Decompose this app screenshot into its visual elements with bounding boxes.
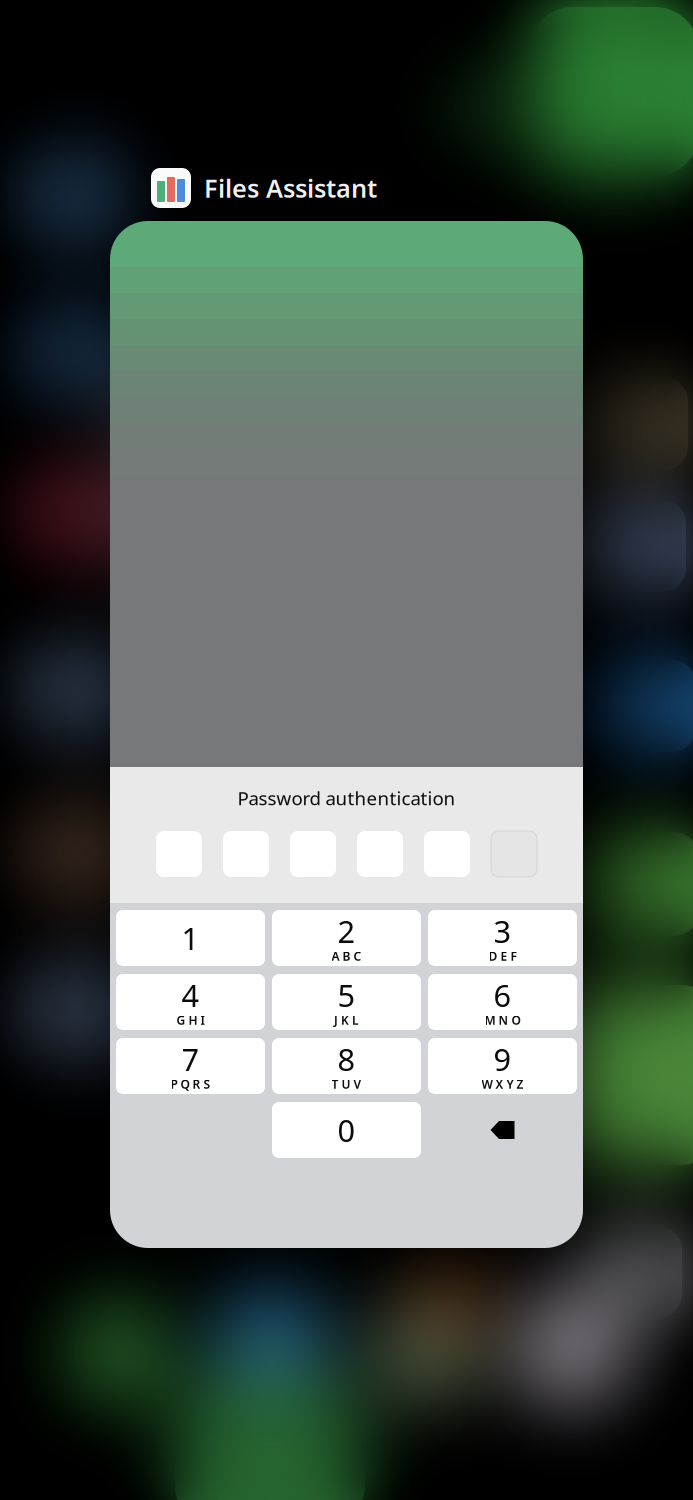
staticText: 5 <box>337 975 355 1015</box>
staticText: D E F <box>488 948 516 964</box>
staticText: T U V <box>331 1076 361 1092</box>
staticText: 3 <box>493 911 511 951</box>
staticText: 4 <box>181 975 199 1015</box>
staticText: Password authentication <box>237 786 455 810</box>
staticText: P Q R S <box>170 1076 210 1092</box>
staticText: M N O <box>484 1012 520 1028</box>
staticText: 1 <box>181 918 199 958</box>
button[interactable]: 2 <box>272 910 421 966</box>
button[interactable]: 6 <box>428 974 577 1030</box>
button[interactable]: 5 <box>272 974 421 1030</box>
staticText: 6 <box>493 975 511 1015</box>
button[interactable]: 7 <box>116 1038 265 1094</box>
button[interactable]: 1 <box>116 910 265 966</box>
staticText: J K L <box>334 1012 359 1028</box>
staticText: 9 <box>493 1039 511 1079</box>
staticText: A B C <box>331 948 361 964</box>
button[interactable]: 9 <box>428 1038 577 1094</box>
button[interactable]: Delete <box>428 1102 577 1158</box>
staticText: 0 <box>337 1110 355 1150</box>
staticText: 8 <box>337 1039 355 1079</box>
button[interactable]: 0 <box>272 1102 421 1158</box>
staticText: Files Assistant <box>204 171 377 205</box>
staticText: G H I <box>176 1012 204 1028</box>
staticText: 7 <box>181 1039 199 1079</box>
button[interactable]: 3 <box>428 910 577 966</box>
staticText: W X Y Z <box>481 1076 523 1092</box>
staticText: 2 <box>337 911 355 951</box>
button[interactable]: 8 <box>272 1038 421 1094</box>
button[interactable]: 4 <box>116 974 265 1030</box>
